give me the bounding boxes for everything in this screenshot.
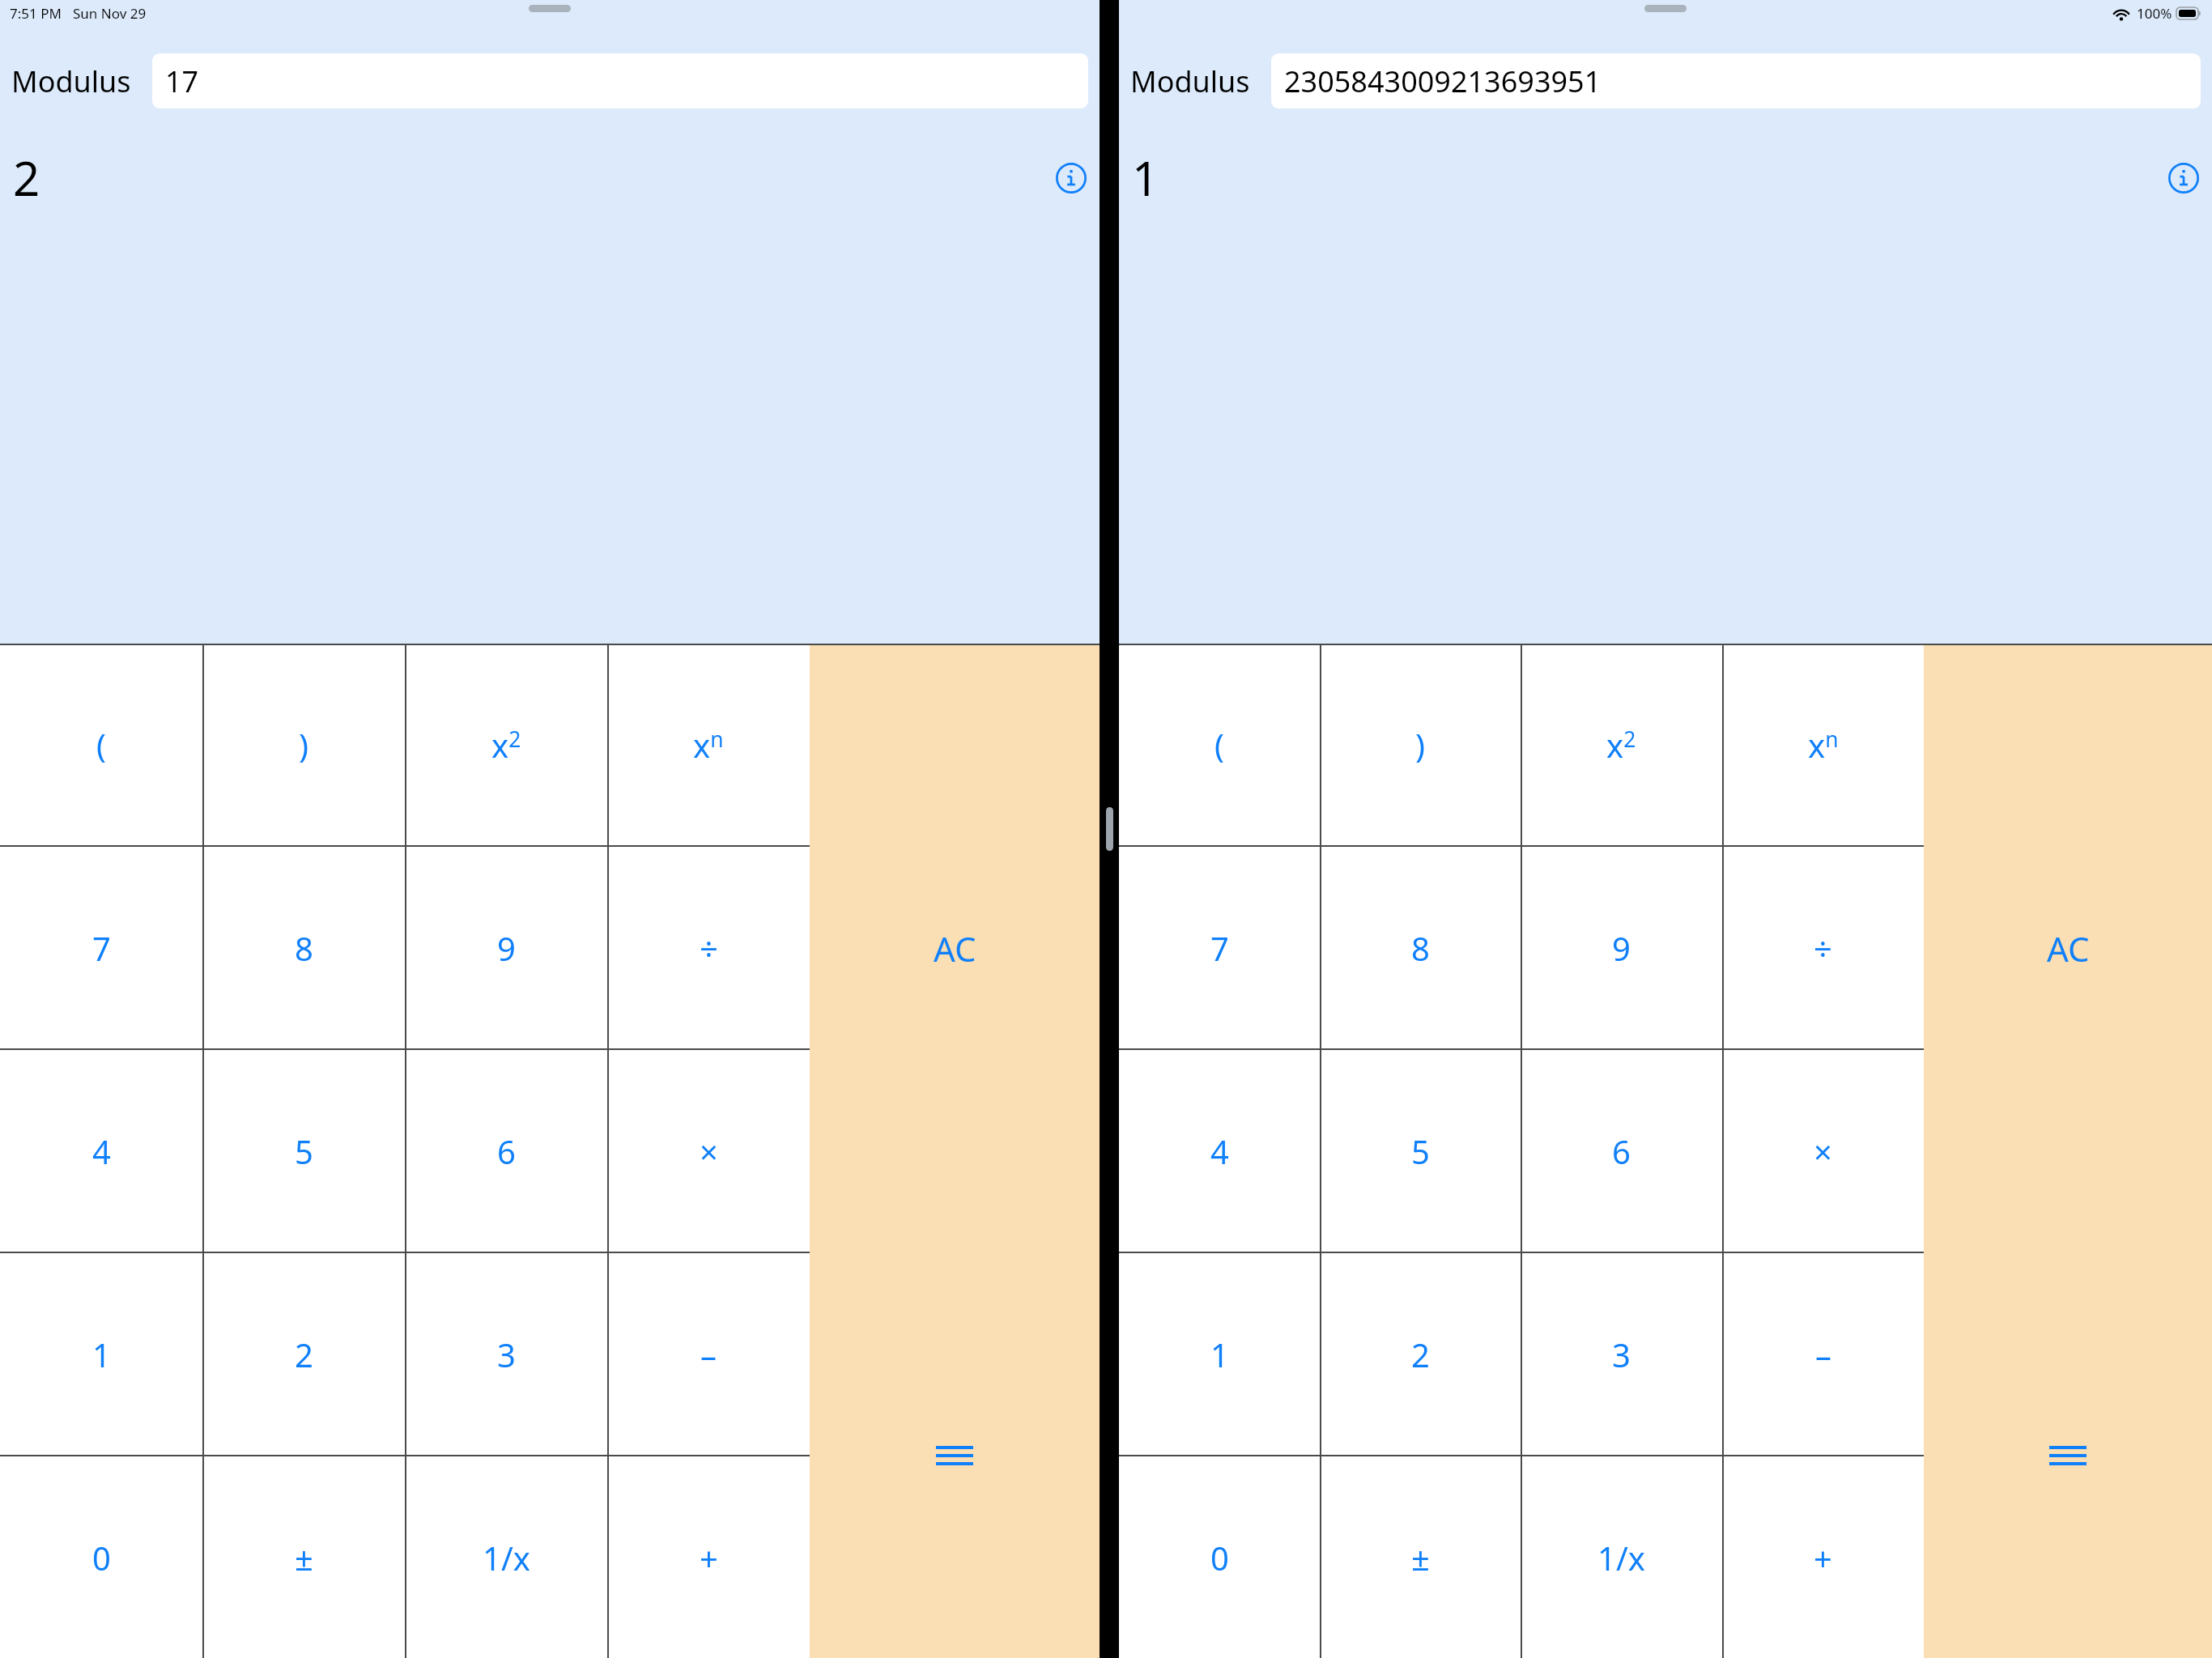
button[interactable]: Info: [1056, 163, 1087, 193]
button[interactable]: 2305843009213693951: [1271, 53, 2201, 108]
staticText: 7: [92, 926, 111, 970]
button[interactable]: 8: [202, 847, 405, 1048]
staticText: 2305843009213693951: [1284, 62, 1602, 101]
button[interactable]: 0: [1119, 1456, 1320, 1658]
button[interactable]: 0: [0, 1456, 202, 1658]
staticText: ±: [295, 1536, 313, 1579]
button[interactable]: 9: [1521, 847, 1722, 1048]
staticText: 8: [295, 926, 313, 970]
staticText: Modulus: [11, 62, 131, 101]
staticText: 6: [497, 1129, 516, 1173]
staticText: 3: [1612, 1333, 1631, 1376]
staticText: 9: [1612, 926, 1631, 970]
button[interactable]: (: [0, 644, 202, 845]
staticText: xn: [1808, 723, 1839, 767]
staticText: 2: [1411, 1333, 1430, 1376]
staticText: –: [700, 1333, 717, 1376]
button[interactable]: +: [607, 1456, 810, 1658]
button[interactable]: 1: [1119, 1253, 1320, 1455]
button[interactable]: AC: [1924, 644, 2212, 1252]
staticText: (: [1214, 723, 1224, 767]
button[interactable]: 6: [405, 1050, 607, 1252]
button[interactable]: x2: [1521, 644, 1722, 845]
staticText: 3: [497, 1333, 516, 1376]
button[interactable]: 5: [202, 1050, 405, 1252]
staticText: 1: [1132, 146, 1159, 210]
button[interactable]: 7: [1119, 847, 1320, 1048]
staticText: +: [1814, 1536, 1832, 1579]
button[interactable]: 5: [1320, 1050, 1521, 1252]
button[interactable]: ): [202, 644, 405, 845]
button[interactable]: Equals: [810, 1252, 1100, 1658]
staticText: 2: [295, 1333, 313, 1376]
staticText: 4: [1210, 1129, 1229, 1173]
staticText: 17: [165, 62, 199, 101]
staticText: 1/x: [1597, 1536, 1645, 1579]
staticText: AC: [934, 925, 976, 971]
staticText: 5: [1411, 1129, 1430, 1173]
button[interactable]: 1/x: [405, 1456, 607, 1658]
button[interactable]: 1: [0, 1253, 202, 1455]
staticText: 0: [92, 1536, 111, 1579]
staticText: 6: [1612, 1129, 1631, 1173]
staticText: ÷: [1814, 926, 1832, 970]
staticText: 9: [497, 926, 516, 970]
button[interactable]: xn: [607, 644, 810, 845]
button[interactable]: 4: [1119, 1050, 1320, 1252]
button[interactable]: 9: [405, 847, 607, 1048]
button[interactable]: xn: [1722, 644, 1924, 845]
button[interactable]: (: [1119, 644, 1320, 845]
button[interactable]: ×: [607, 1050, 810, 1252]
button[interactable]: 7: [0, 847, 202, 1048]
button[interactable]: Equals: [1924, 1252, 2212, 1658]
button[interactable]: –: [1722, 1253, 1924, 1455]
button[interactable]: 1/x: [1521, 1456, 1722, 1658]
staticText: +: [700, 1536, 718, 1579]
button[interactable]: 3: [1521, 1253, 1722, 1455]
staticText: ×: [700, 1129, 718, 1173]
button[interactable]: 2: [1320, 1253, 1521, 1455]
button[interactable]: AC: [810, 644, 1100, 1252]
staticText: Sun Nov 29: [73, 4, 147, 23]
staticText: xn: [693, 723, 724, 767]
button[interactable]: ±: [202, 1456, 405, 1658]
staticText: 8: [1411, 926, 1430, 970]
button[interactable]: ÷: [1722, 847, 1924, 1048]
staticText: ÷: [700, 926, 718, 970]
staticText: ): [299, 723, 308, 767]
button[interactable]: x2: [405, 644, 607, 845]
staticText: 7: [1210, 926, 1229, 970]
staticText: AC: [2047, 925, 2090, 971]
staticText: 7:51 PM: [10, 4, 62, 23]
button[interactable]: ): [1320, 644, 1521, 845]
staticText: (: [96, 723, 106, 767]
staticText: Modulus: [1130, 62, 1250, 101]
staticText: 1: [1210, 1333, 1229, 1376]
staticText: 0: [1210, 1536, 1229, 1579]
staticText: x2: [1606, 723, 1636, 767]
button[interactable]: ×: [1722, 1050, 1924, 1252]
staticText: 1: [92, 1333, 111, 1376]
staticText: 4: [92, 1129, 111, 1173]
staticText: ×: [1814, 1129, 1832, 1173]
button[interactable]: 4: [0, 1050, 202, 1252]
staticText: ±: [1411, 1536, 1430, 1579]
button[interactable]: 2: [202, 1253, 405, 1455]
staticText: 2: [13, 146, 40, 210]
button[interactable]: ±: [1320, 1456, 1521, 1658]
button[interactable]: Info: [2168, 163, 2199, 193]
button[interactable]: 6: [1521, 1050, 1722, 1252]
button[interactable]: ÷: [607, 847, 810, 1048]
button[interactable]: –: [607, 1253, 810, 1455]
staticText: –: [1815, 1333, 1831, 1376]
button[interactable]: 3: [405, 1253, 607, 1455]
staticText: 5: [295, 1129, 313, 1173]
staticText: 1/x: [483, 1536, 530, 1579]
staticText: 100%: [2137, 4, 2172, 23]
staticText: ): [1415, 723, 1425, 767]
button[interactable]: +: [1722, 1456, 1924, 1658]
button[interactable]: 17: [152, 53, 1088, 108]
button[interactable]: 8: [1320, 847, 1521, 1048]
staticText: x2: [491, 723, 521, 767]
